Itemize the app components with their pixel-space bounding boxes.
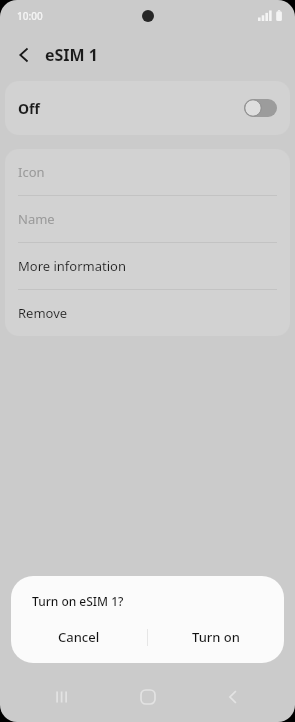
- button[interactable]: Recents: [38, 673, 86, 721]
- staticText: Turn on: [192, 628, 240, 646]
- staticText: Cancel: [58, 628, 100, 646]
- button[interactable]: Remove: [5, 290, 290, 336]
- staticText: Name: [18, 210, 55, 228]
- staticText: Turn on eSIM 1?: [32, 593, 124, 609]
- staticText: Icon: [18, 163, 45, 181]
- staticText: Remove: [18, 304, 68, 322]
- button[interactable]: Turn on: [148, 623, 284, 651]
- button[interactable]: Name: [5, 196, 290, 242]
- staticText: Off: [18, 99, 40, 118]
- button[interactable]: Icon: [5, 149, 290, 195]
- staticText: More information: [18, 257, 126, 275]
- button[interactable]: Home: [124, 673, 172, 721]
- staticText: 10:00: [17, 9, 43, 23]
- button[interactable]: Back: [8, 39, 40, 71]
- staticText: eSIM 1: [45, 44, 98, 66]
- button[interactable]: Cancel: [11, 623, 147, 651]
- button[interactable]: Off: [5, 81, 290, 135]
- button[interactable]: More information: [5, 243, 290, 289]
